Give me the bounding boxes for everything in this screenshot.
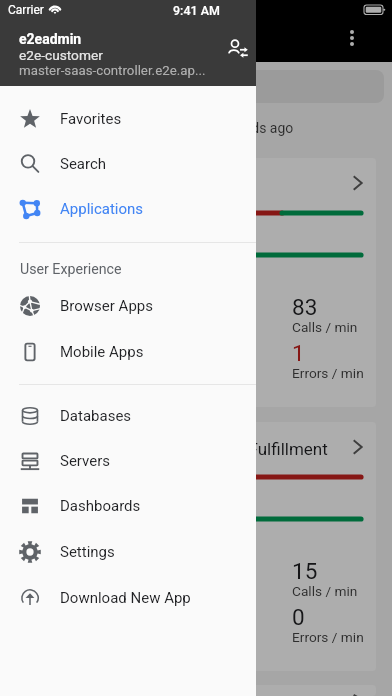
- staticText: e2e-customer: [19, 47, 103, 63]
- staticText: Errors / min: [292, 365, 364, 381]
- button[interactable]: Dashboards: [0, 483, 256, 528]
- button[interactable]: Open Inventory Sync details: [342, 694, 374, 696]
- button[interactable]: Mobile Apps: [0, 329, 256, 374]
- staticText: 9:41 AM: [173, 3, 220, 18]
- staticText: 0: [292, 604, 305, 630]
- staticText: 15: [292, 558, 318, 584]
- staticText: Mobile Apps: [60, 343, 144, 361]
- button[interactable]: Applications: [0, 186, 256, 231]
- button[interactable]: Inventory Sync: [16, 685, 376, 696]
- staticText: Browser Apps: [60, 297, 153, 315]
- staticText: Dashboards: [60, 497, 141, 515]
- staticText: 1: [292, 340, 305, 366]
- staticText: Carrier: [8, 3, 44, 17]
- button[interactable]: Databases: [0, 393, 256, 438]
- button[interactable]: Favorites: [0, 96, 256, 141]
- staticText: Favorites: [60, 110, 122, 128]
- button[interactable]: Open Checkout Service details: [342, 167, 374, 199]
- staticText: Download New App: [60, 589, 191, 607]
- button[interactable]: Open navigation menu: [8, 24, 40, 56]
- staticText: Retail Distribution and Order Fulfillmen…: [32, 439, 328, 459]
- staticText: 83: [292, 294, 318, 320]
- staticText: e2eadmin: [19, 31, 82, 47]
- staticText: master-saas-controller.e2e.ap...: [19, 63, 206, 79]
- staticText: Calls / min: [292, 319, 358, 335]
- staticText: Applications: [60, 200, 144, 218]
- button[interactable]: Settings: [0, 529, 256, 574]
- staticText: User Experience: [20, 261, 122, 278]
- button[interactable]: Search applications: [8, 70, 384, 103]
- button[interactable]: Download New App: [0, 575, 256, 620]
- staticText: Search: [60, 155, 107, 173]
- staticText: Calls / min: [292, 583, 358, 599]
- button[interactable]: Retail Distribution and Order Fulfillmen…: [16, 422, 376, 671]
- staticText: Search applications: [42, 79, 165, 95]
- button[interactable]: More options: [338, 24, 366, 52]
- staticText: Errors / min: [292, 629, 364, 645]
- button[interactable]: Open Retail Distribution and Order Fulfi…: [342, 431, 374, 463]
- staticText: Databases: [60, 407, 132, 425]
- staticText: Servers: [60, 452, 111, 470]
- button[interactable]: Servers: [0, 438, 256, 483]
- button[interactable]: Browser Apps: [0, 283, 256, 328]
- button[interactable]: Checkout Service: [16, 158, 376, 407]
- staticText: Application health refreshed 41 seconds …: [16, 120, 294, 136]
- button[interactable]: Switch account: [222, 33, 252, 63]
- button[interactable]: Search: [0, 141, 256, 186]
- staticText: Settings: [60, 543, 115, 561]
